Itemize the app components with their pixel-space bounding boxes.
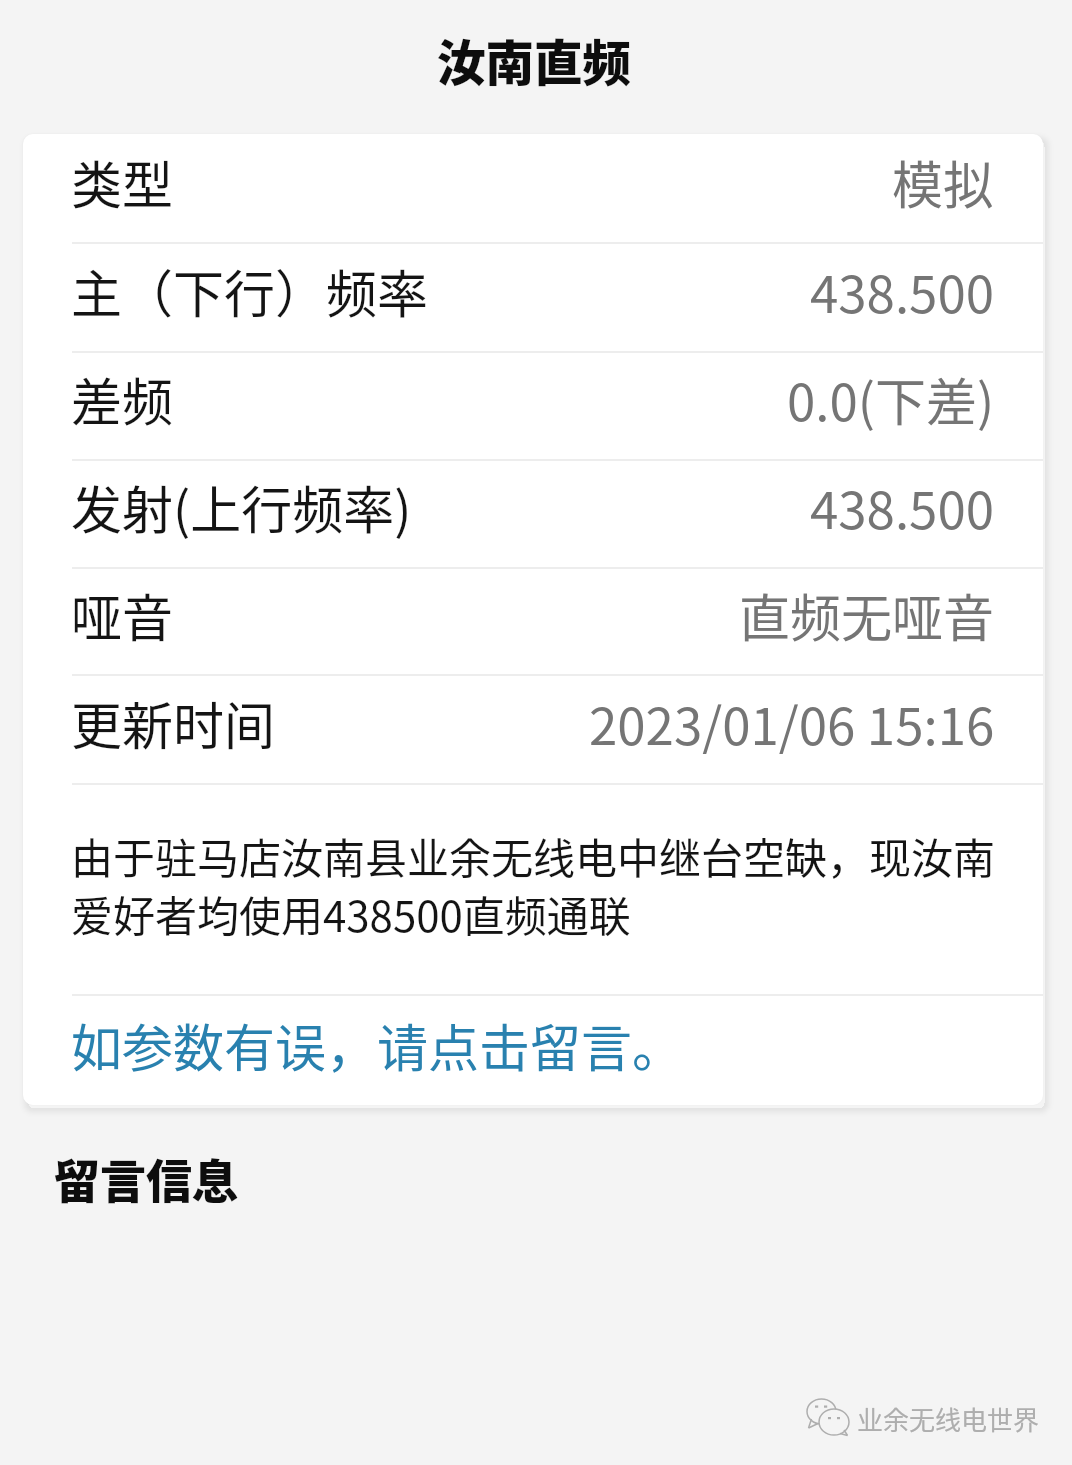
staticText: 主（下行）频率 xyxy=(71,254,429,328)
button[interactable]: 发射(上行频率) xyxy=(23,459,1043,567)
button[interactable]: 更新时间 xyxy=(23,674,1043,783)
other: WeChat official account xyxy=(806,1397,852,1437)
staticText: 发射(上行频率) xyxy=(71,470,412,544)
staticText: 哑音 xyxy=(71,578,174,652)
button[interactable]: 如参数有误，请点击留言。 xyxy=(23,996,1043,1105)
button[interactable]: 差频 xyxy=(23,351,1043,459)
staticText: 438.500 xyxy=(810,470,995,544)
staticText: 由于驻马店汝南县业余无线电中继台空缺，现汝南爱好者均使用438500直频通联 xyxy=(71,825,995,944)
staticText: 类型 xyxy=(71,145,174,219)
staticText: 2023/01/06 15:16 xyxy=(589,686,995,760)
staticText: 差频 xyxy=(71,362,174,436)
staticText: 更新时间 xyxy=(71,686,276,760)
staticText: 0.0(下差) xyxy=(787,362,995,436)
staticText: 业余无线电世界 xyxy=(857,1400,1040,1438)
staticText: 如参数有误，请点击留言。 xyxy=(71,1008,684,1082)
staticText: 438.500 xyxy=(810,254,995,328)
staticText: 直频无哑音 xyxy=(739,578,995,652)
button[interactable]: 主（下行）频率 xyxy=(23,242,1043,351)
staticText: 留言信息 xyxy=(54,1145,238,1212)
staticText: 汝南直频 xyxy=(437,25,632,95)
button[interactable]: 哑音 xyxy=(23,567,1043,675)
staticText: 模拟 xyxy=(892,145,995,219)
button[interactable]: 类型 xyxy=(23,134,1043,242)
